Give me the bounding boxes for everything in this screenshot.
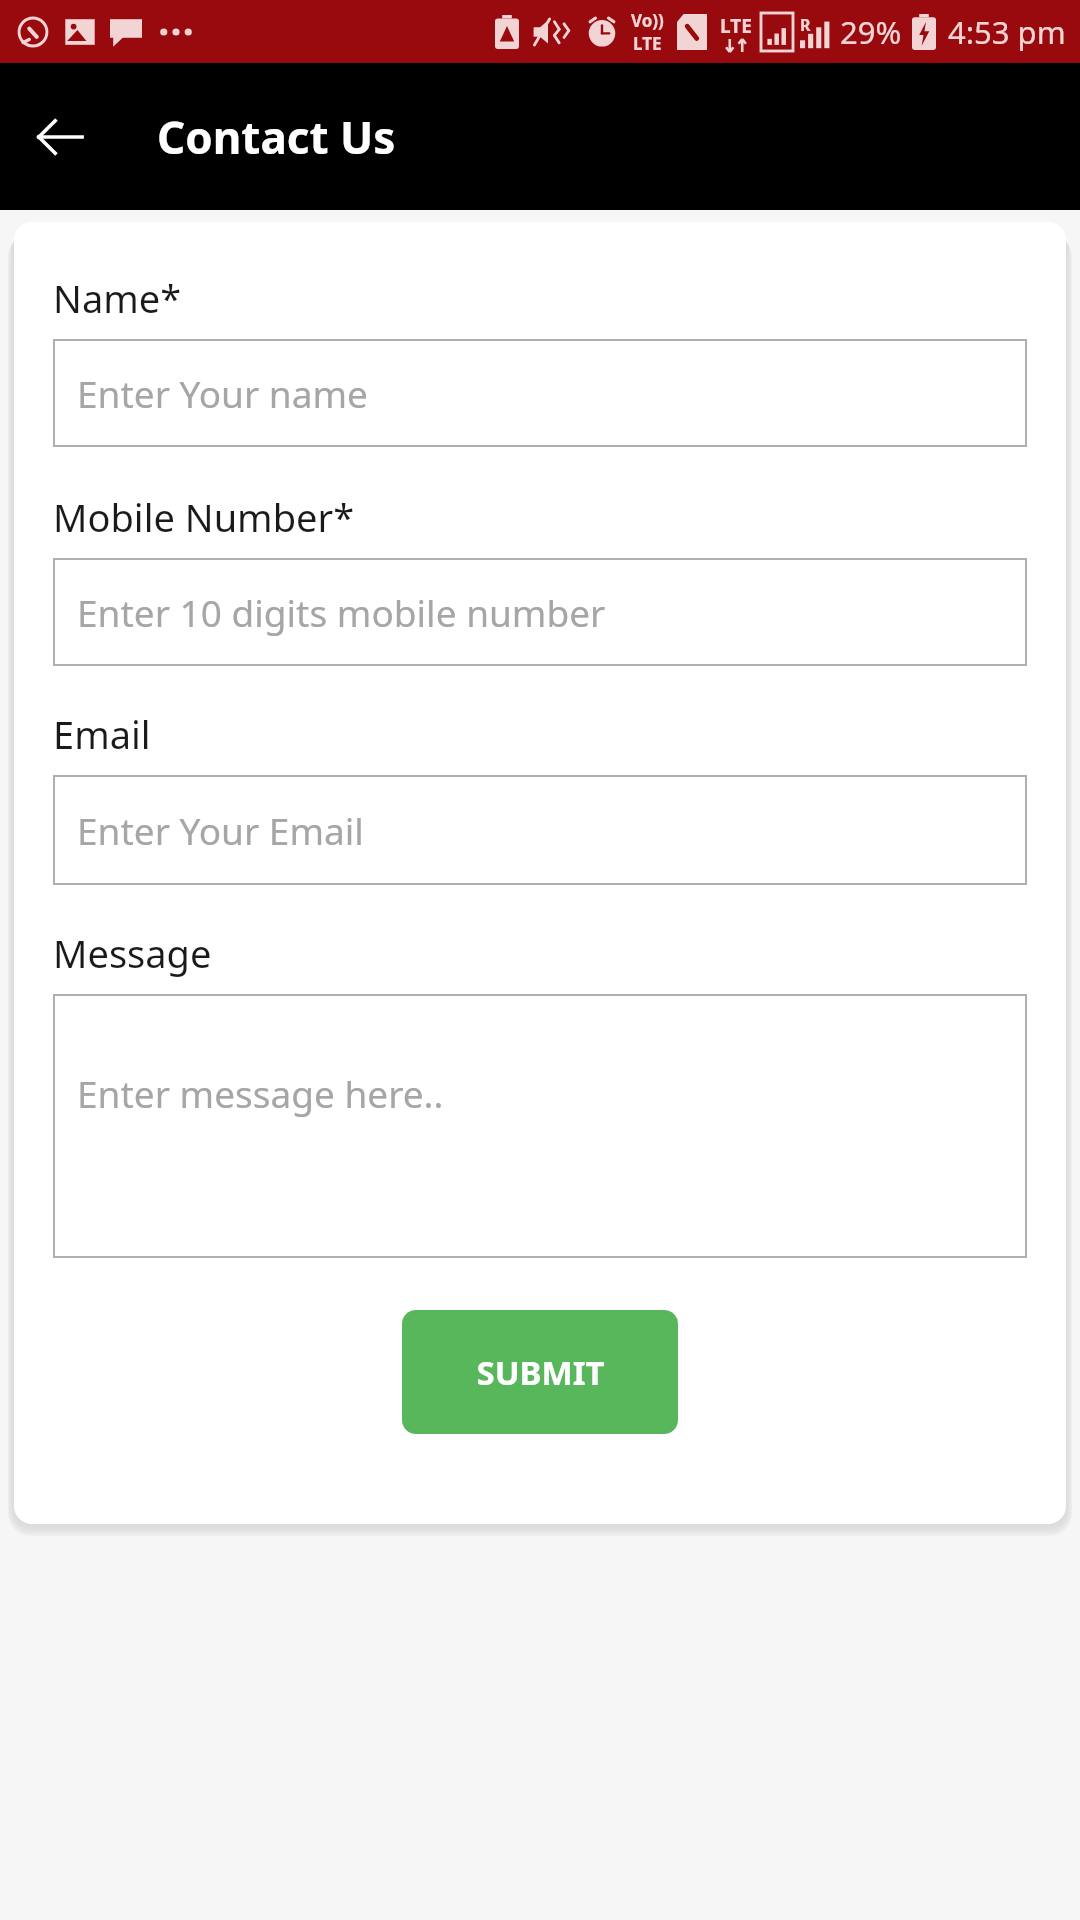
staticText: Vo)) [631, 9, 664, 32]
staticText: Enter 10 digits mobile number [77, 587, 606, 637]
staticText: Enter Your name [77, 368, 368, 418]
staticText: Enter message here.. [77, 1068, 444, 1118]
staticText: LTE [633, 32, 662, 55]
staticText: Name* [53, 272, 182, 324]
button[interactable]: Back [22, 99, 98, 175]
button[interactable]: Enter message here.. [53, 994, 1027, 1258]
staticText: Contact Us [157, 107, 396, 167]
staticText: Message [53, 927, 212, 979]
staticText: SUBMIT [476, 1350, 605, 1395]
button[interactable]: Enter Your Email [53, 775, 1027, 885]
staticText: LTE [720, 13, 752, 39]
staticText: Enter Your Email [77, 805, 364, 855]
button[interactable]: SUBMIT [402, 1310, 678, 1434]
staticText: R [800, 14, 811, 36]
staticText: Mobile Number* [53, 491, 355, 543]
staticText: 29% [840, 11, 902, 53]
button[interactable]: Enter Your name [53, 339, 1027, 447]
staticText: Email [53, 708, 151, 760]
button[interactable]: Enter 10 digits mobile number [53, 558, 1027, 666]
staticText: 4:53 pm [948, 11, 1066, 53]
